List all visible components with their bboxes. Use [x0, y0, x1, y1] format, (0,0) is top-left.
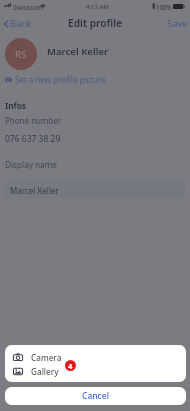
button[interactable]: Marcel Keller — [5, 179, 185, 199]
staticText: Gallery — [31, 366, 59, 377]
button[interactable]: Back — [0, 15, 38, 32]
staticText: Display name — [5, 159, 57, 170]
staticText: Swisscom — [13, 3, 43, 12]
staticText: Edit profile — [68, 16, 123, 30]
staticText: Cancel — [82, 390, 109, 402]
button[interactable]: Camera — [5, 350, 186, 364]
staticText: 100% — [156, 3, 172, 11]
button[interactable]: Set a new profile picture — [0, 73, 106, 86]
staticText: Marcel Keller — [10, 185, 59, 196]
staticText: Phone number — [5, 115, 62, 126]
staticText: Back — [10, 17, 32, 30]
staticText: RS — [15, 48, 27, 61]
staticText: Camera — [31, 352, 62, 363]
button[interactable]: Cancel — [5, 387, 186, 405]
button[interactable]: RS — [5, 38, 37, 70]
button[interactable]: Save — [161, 15, 190, 32]
button[interactable]: Gallery — [5, 364, 186, 378]
staticText: 4 — [68, 361, 73, 371]
staticText: Marcel Keller — [47, 45, 109, 58]
staticText: Infos — [5, 100, 26, 111]
staticText: 4:13 AM — [86, 3, 109, 11]
staticText: Save — [167, 17, 188, 30]
staticText: 076 637 38 29 — [5, 133, 61, 145]
staticText: Set a new profile picture — [15, 74, 106, 85]
